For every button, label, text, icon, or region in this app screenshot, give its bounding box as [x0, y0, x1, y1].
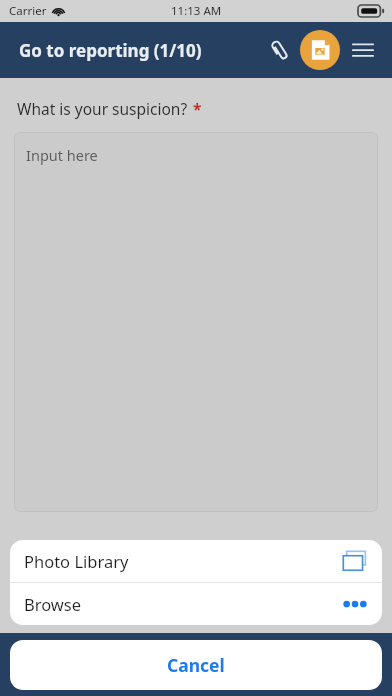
button[interactable]: Attached image document [300, 30, 340, 70]
staticText: Carrier [9, 3, 47, 19]
staticText: 11:13 AM [171, 3, 222, 19]
staticText: Photo Library [24, 550, 129, 572]
staticText: Input here [26, 145, 98, 165]
staticText: Browse [24, 593, 82, 615]
staticText: What is your suspicion? [17, 98, 188, 119]
button[interactable]: Browse [10, 583, 382, 625]
button[interactable]: Cancel [10, 640, 382, 690]
button[interactable]: Photo Library [10, 540, 382, 582]
button[interactable]: Input here [14, 132, 378, 512]
button[interactable]: Menu [344, 31, 382, 69]
staticText: Go to reporting (1/10) [19, 39, 202, 62]
staticText: Cancel [167, 653, 225, 677]
button[interactable]: Attach file [260, 31, 298, 69]
staticText: * [193, 98, 202, 119]
